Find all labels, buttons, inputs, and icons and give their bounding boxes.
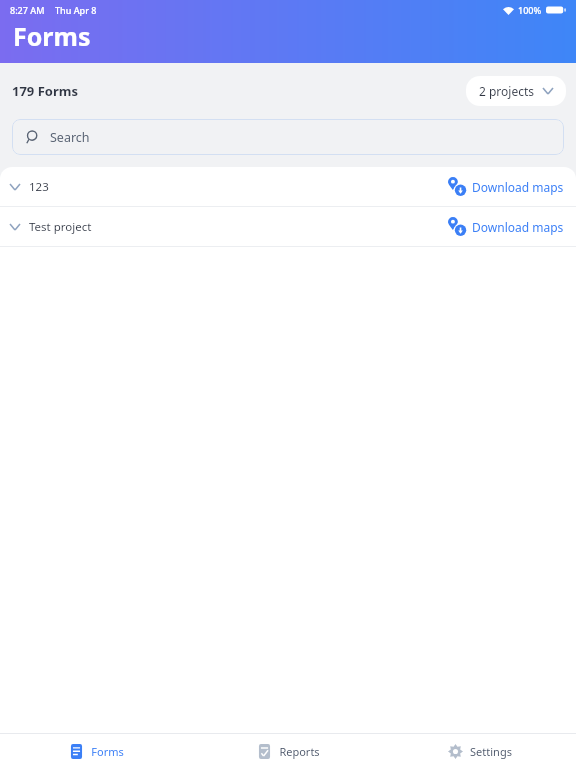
staticText: Search: [50, 129, 90, 146]
staticText: 8:27 AM: [10, 4, 45, 16]
button[interactable]: Download maps: [438, 171, 574, 202]
button[interactable]: 123: [0, 167, 576, 206]
staticText: 179 Forms: [12, 82, 78, 100]
staticText: Reports: [279, 744, 320, 759]
button[interactable]: 2 projects: [466, 76, 566, 106]
staticText: 100%: [518, 4, 542, 16]
staticText: Settings: [470, 744, 512, 759]
staticText: Thu Apr 8: [55, 4, 97, 16]
staticText: 2 projects: [479, 83, 535, 99]
button[interactable]: Forms: [0, 734, 192, 768]
staticText: Forms: [91, 744, 124, 759]
staticText: Download maps: [472, 219, 564, 235]
button[interactable]: Download maps: [438, 211, 574, 242]
button[interactable]: Search: [12, 119, 564, 155]
staticText: Test project: [29, 219, 92, 235]
button[interactable]: Settings: [384, 734, 576, 768]
staticText: Forms: [13, 19, 91, 53]
button[interactable]: Test project: [0, 207, 576, 246]
staticText: 123: [29, 179, 49, 195]
staticText: Download maps: [472, 179, 564, 195]
button[interactable]: Reports: [192, 734, 384, 768]
